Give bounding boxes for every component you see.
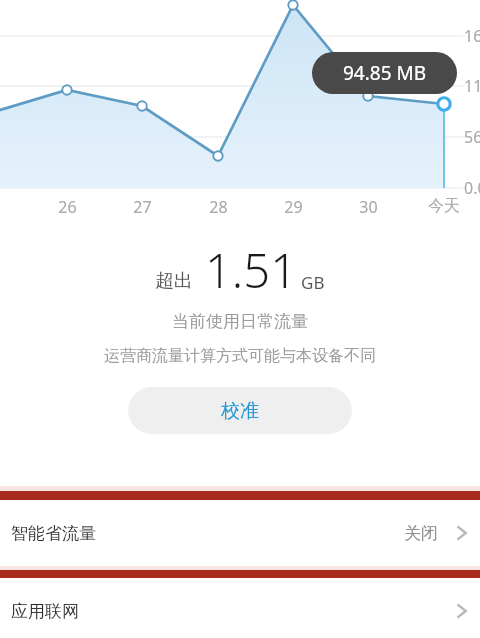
staticText: 智能省流量 bbox=[11, 523, 96, 544]
staticText: 超出 bbox=[155, 269, 193, 293]
staticText: 56 bbox=[464, 126, 480, 148]
staticText: 28 bbox=[209, 196, 228, 218]
button[interactable]: 智能省流量 bbox=[0, 500, 480, 566]
button[interactable]: 94.85 MB bbox=[312, 52, 457, 94]
staticText: 当前使用日常流量 bbox=[172, 311, 308, 332]
staticText: 校准 bbox=[221, 399, 259, 423]
other: Open bbox=[446, 518, 476, 548]
other: Open bbox=[446, 596, 476, 626]
staticText: 27 bbox=[133, 196, 152, 218]
staticText: 112 bbox=[464, 75, 480, 97]
button[interactable]: 校准 bbox=[128, 387, 352, 434]
button[interactable]: 应用联网 bbox=[0, 578, 480, 638]
staticText: 今天 bbox=[428, 196, 460, 216]
staticText: 29 bbox=[284, 196, 303, 218]
staticText: 应用联网 bbox=[11, 601, 79, 622]
staticText: 关闭 bbox=[404, 523, 438, 544]
staticText: 169 bbox=[464, 25, 480, 47]
staticText: 1.51 bbox=[205, 238, 297, 302]
staticText: 26 bbox=[58, 196, 77, 218]
staticText: 0.0 bbox=[464, 177, 480, 199]
staticText: 30 bbox=[359, 196, 378, 218]
staticText: 94.85 MB bbox=[343, 60, 427, 86]
staticText: 运营商流量计算方式可能与本设备不同 bbox=[104, 346, 376, 366]
staticText: GB bbox=[301, 271, 325, 294]
